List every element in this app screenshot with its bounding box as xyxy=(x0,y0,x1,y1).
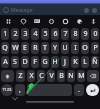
button[interactable]: E xyxy=(21,42,29,54)
button[interactable]: Settings xyxy=(58,15,72,27)
staticText: A xyxy=(3,57,8,67)
staticText: X xyxy=(29,71,34,81)
button[interactable]: T xyxy=(41,42,49,54)
staticText: 4 xyxy=(33,29,38,39)
staticText: E xyxy=(23,43,27,53)
staticText: T xyxy=(43,43,47,53)
staticText: P xyxy=(93,43,98,53)
button[interactable]: X xyxy=(27,70,35,82)
button[interactable]: , xyxy=(15,84,25,96)
staticText: G xyxy=(42,57,48,67)
button[interactable]: I xyxy=(71,42,79,54)
staticText: V xyxy=(49,71,54,81)
button[interactable]: K xyxy=(71,56,79,68)
staticText: J xyxy=(64,57,66,67)
button[interactable]: 2 xyxy=(11,28,19,40)
staticText: Ñ xyxy=(92,57,98,67)
button[interactable]: A xyxy=(1,56,9,68)
staticText: 1 xyxy=(3,29,8,39)
button[interactable]: Voice input xyxy=(86,15,100,27)
staticText: U xyxy=(62,43,68,53)
button[interactable]: 9 xyxy=(81,28,89,40)
button[interactable]: M xyxy=(77,70,85,82)
button[interactable]: Emoji xyxy=(2,6,10,14)
staticText: R xyxy=(33,43,38,53)
button[interactable]: 3 xyxy=(21,28,29,40)
button[interactable]: Enter xyxy=(86,84,99,96)
staticText: C xyxy=(39,71,44,81)
staticText: D xyxy=(22,57,28,67)
button[interactable]: Emoji xyxy=(44,15,58,27)
button[interactable]: Ñ xyxy=(91,56,99,68)
staticText: 0 xyxy=(93,29,98,39)
staticText: Y xyxy=(53,43,57,53)
button[interactable]: 8 xyxy=(71,28,79,40)
button[interactable]: U xyxy=(61,42,69,54)
staticText: W xyxy=(12,43,19,53)
staticText: H xyxy=(52,57,58,67)
button[interactable]: Space xyxy=(27,84,72,96)
staticText: 2 xyxy=(13,29,18,39)
staticText: K xyxy=(73,57,78,67)
button[interactable]: 6 xyxy=(51,28,59,40)
button[interactable]: GIF xyxy=(30,15,44,27)
button[interactable]: F xyxy=(31,56,39,68)
button[interactable]: P xyxy=(91,42,99,54)
button[interactable]: Clipboard xyxy=(1,15,15,27)
staticText: . xyxy=(78,85,80,95)
button[interactable]: 1 xyxy=(1,28,9,40)
button[interactable]: S xyxy=(11,56,19,68)
button[interactable]: Y xyxy=(51,42,59,54)
staticText: Message xyxy=(11,6,33,13)
button[interactable]: Backspace xyxy=(87,70,99,82)
button[interactable]: G xyxy=(41,56,49,68)
staticText: L xyxy=(83,57,87,67)
button[interactable]: R xyxy=(31,42,39,54)
button[interactable]: Themes xyxy=(72,15,86,27)
button[interactable]: W xyxy=(11,42,19,54)
staticText: B xyxy=(59,71,64,81)
button[interactable]: D xyxy=(21,56,29,68)
button[interactable]: L xyxy=(81,56,89,68)
staticText: 8 xyxy=(73,29,78,39)
staticText: GIF xyxy=(34,19,40,23)
staticText: 3 xyxy=(23,29,28,39)
staticText: Q xyxy=(2,43,8,53)
staticText: 7 xyxy=(63,29,68,39)
button[interactable]: Camera xyxy=(90,6,98,14)
button[interactable]: H xyxy=(51,56,59,68)
staticText: M xyxy=(78,71,85,81)
staticText: S xyxy=(13,57,17,67)
button[interactable]: . xyxy=(74,84,84,96)
button[interactable]: ?123 xyxy=(1,84,13,96)
staticText: 6 xyxy=(53,29,58,39)
staticText: , xyxy=(19,85,21,95)
staticText: 9 xyxy=(83,29,88,39)
button[interactable]: 0 xyxy=(91,28,99,40)
staticText: I xyxy=(74,43,77,53)
button[interactable]: 4 xyxy=(31,28,39,40)
button[interactable]: O xyxy=(81,42,89,54)
staticText: 5 xyxy=(43,29,48,39)
button[interactable]: C xyxy=(37,70,45,82)
button[interactable]: Shift xyxy=(1,70,14,82)
staticText: F xyxy=(33,57,37,67)
staticText: N xyxy=(68,71,74,81)
button[interactable]: Z xyxy=(16,70,25,82)
button[interactable]: B xyxy=(57,70,65,82)
staticText: Z xyxy=(18,71,23,81)
staticText: ?123 xyxy=(2,87,12,93)
button[interactable]: Attach file xyxy=(82,6,90,14)
button[interactable]: Stickers xyxy=(16,15,30,27)
button[interactable]: 7 xyxy=(61,28,69,40)
button[interactable]: N xyxy=(67,70,75,82)
button[interactable]: 5 xyxy=(41,28,49,40)
button[interactable]: V xyxy=(47,70,55,82)
staticText: O xyxy=(82,43,88,53)
button[interactable]: Q xyxy=(1,42,9,54)
button[interactable]: J xyxy=(61,56,69,68)
